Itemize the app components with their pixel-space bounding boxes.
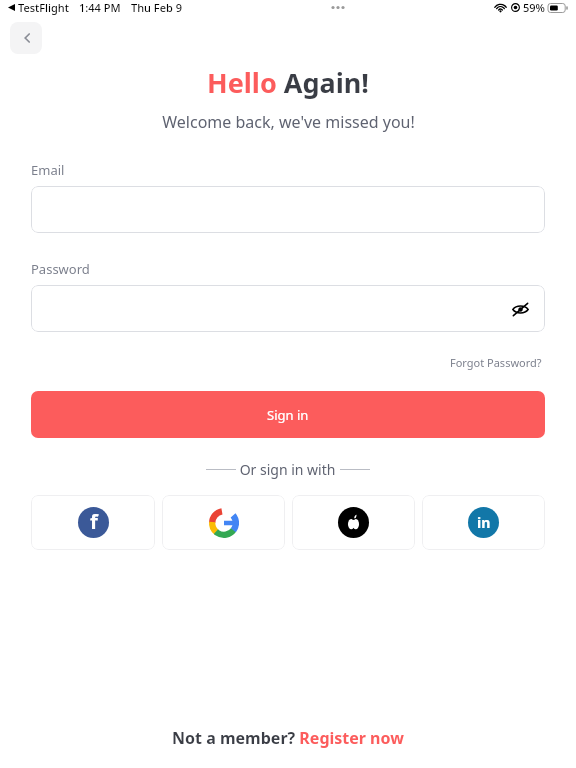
button[interactable]: Sign in: [31, 391, 545, 438]
button[interactable]: Show password: [31, 285, 545, 332]
button[interactable]: Sign in with Apple: [292, 495, 415, 550]
staticText: 59%: [523, 0, 545, 15]
button[interactable]: Show password: [509, 298, 531, 320]
staticText: Forgot Password?: [450, 355, 542, 370]
button[interactable]: Sign in with LinkedIn: [422, 495, 545, 550]
button[interactable]: Back: [10, 22, 42, 54]
button[interactable]: Sign in with Facebook: [31, 495, 155, 550]
button[interactable]: Sign in with Google: [162, 495, 285, 550]
staticText: Password: [31, 260, 90, 278]
staticText: in: [477, 513, 491, 532]
staticText: Hello Again!: [207, 64, 369, 101]
staticText: Or sign in with: [236, 460, 340, 479]
staticText: 1:44 PM: [79, 0, 121, 15]
button[interactable]: [31, 186, 545, 233]
staticText: Email: [31, 161, 65, 179]
staticText: Welcome back, we've missed you!: [162, 111, 415, 133]
staticText: Not a member? Register now: [172, 727, 404, 749]
staticText: TestFlight: [18, 0, 69, 15]
staticText: f: [90, 508, 98, 535]
staticText: Thu Feb 9: [131, 0, 182, 15]
button[interactable]: Not a member? Register now: [0, 727, 576, 749]
button[interactable]: Forgot Password?: [447, 352, 545, 373]
staticText: Sign in: [267, 406, 309, 424]
